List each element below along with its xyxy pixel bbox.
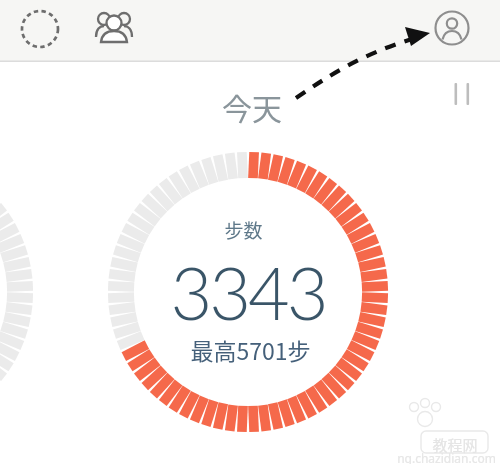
button[interactable] bbox=[431, 7, 473, 49]
button[interactable] bbox=[18, 7, 62, 51]
button[interactable] bbox=[92, 7, 136, 51]
staticText: 步数 bbox=[224, 216, 263, 244]
staticText: ng.chazidian.com bbox=[397, 450, 496, 464]
staticText: 3343 bbox=[170, 249, 326, 335]
staticText: 最高5701步 bbox=[190, 333, 311, 366]
staticText: 教程网 bbox=[432, 434, 478, 456]
staticText: 今天 bbox=[222, 85, 282, 128]
button[interactable] bbox=[444, 74, 480, 110]
